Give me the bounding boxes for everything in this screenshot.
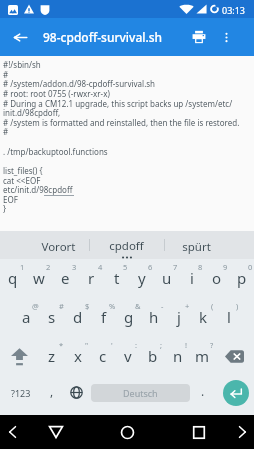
staticText: p <box>237 268 247 288</box>
staticText: . <box>201 383 205 399</box>
button[interactable]: Recent apps <box>181 415 217 449</box>
staticText: 8 <box>198 262 203 272</box>
staticText: a <box>22 307 31 327</box>
staticText: 9 <box>223 262 228 272</box>
button[interactable]: b <box>140 337 165 376</box>
button[interactable]: v <box>115 337 140 376</box>
button[interactable]: . <box>192 376 213 415</box>
staticText: d <box>73 307 83 327</box>
button[interactable]: e <box>52 259 78 298</box>
staticText: t <box>114 268 120 288</box>
staticText: 98-cpdoff-survival.sh <box>43 29 163 45</box>
staticText: * <box>59 340 64 350</box>
staticText: 1 <box>20 262 25 272</box>
staticText: - <box>161 301 164 311</box>
button[interactable]: j <box>166 298 191 337</box>
staticText: @ <box>32 301 39 311</box>
staticText: h <box>149 307 159 327</box>
staticText: list_files() { <box>3 165 43 176</box>
button[interactable]: Next <box>224 415 254 449</box>
staticText: c <box>99 346 107 366</box>
staticText: % <box>109 301 116 311</box>
button[interactable]: Change keyboard language <box>62 376 90 415</box>
staticText: Deutsch <box>123 387 158 399</box>
staticText: #!/sbin/sh <box>3 59 41 70</box>
button[interactable]: t <box>104 259 129 298</box>
staticText: v <box>124 346 132 366</box>
staticText: EOF <box>3 194 18 205</box>
button[interactable]: k <box>191 298 216 337</box>
button[interactable]: o <box>204 259 229 298</box>
staticText: init.d/98cpdoff, <box>3 107 61 118</box>
button[interactable]: Delete <box>215 337 254 376</box>
staticText: n <box>173 346 183 366</box>
button[interactable]: Navigate up <box>0 18 40 56</box>
staticText: # <box>3 69 9 80</box>
staticText: ! <box>185 340 188 350</box>
button[interactable]: s <box>39 298 65 337</box>
button[interactable]: z <box>39 337 65 376</box>
staticText: b <box>148 346 158 366</box>
button[interactable]: spürt <box>164 231 254 259</box>
staticText: 0 <box>248 262 253 272</box>
button[interactable]: d <box>65 298 91 337</box>
button[interactable]: Shift <box>0 337 39 376</box>
staticText: : <box>135 340 138 350</box>
button[interactable]: cpdoff <box>89 231 164 259</box>
button[interactable]: i <box>179 259 204 298</box>
button[interactable]: y <box>129 259 154 298</box>
staticText: # root: root 0755 (-rwxr-xr-x) <box>3 88 110 99</box>
staticText: # During a CM12.1 upgrade, this script b… <box>3 98 233 109</box>
staticText: # <box>3 126 9 137</box>
staticText: j <box>177 307 181 327</box>
button[interactable]: r <box>78 259 104 298</box>
button[interactable]: q <box>0 259 26 298</box>
button[interactable]: m <box>190 337 215 376</box>
button[interactable]: f <box>91 298 116 337</box>
button[interactable]: More options <box>214 25 238 49</box>
staticText: o <box>212 268 222 288</box>
button[interactable]: a <box>13 298 39 337</box>
button[interactable]: Vorort <box>0 231 89 259</box>
button[interactable]: p <box>229 259 254 298</box>
button[interactable]: Previous <box>0 415 30 449</box>
staticText: 03:13 <box>222 4 246 16</box>
staticText: y <box>138 268 146 288</box>
button[interactable]: x <box>65 337 90 376</box>
staticText: 3 <box>72 262 77 272</box>
staticText: x <box>74 346 82 366</box>
staticText: ? <box>210 340 214 350</box>
button[interactable]: Enter <box>223 380 249 406</box>
staticText: etc/init.d/98cpdoff <box>3 184 73 195</box>
button[interactable]: c <box>90 337 115 376</box>
button[interactable]: n <box>165 337 190 376</box>
staticText: m <box>195 346 210 366</box>
button[interactable]: ?123 <box>0 376 41 415</box>
staticText: . /tmp/backuptool.functions <box>3 146 108 157</box>
button[interactable]: h <box>141 298 166 337</box>
button[interactable]: , <box>41 376 62 415</box>
button[interactable]: u <box>154 259 179 298</box>
staticText: l <box>227 307 231 327</box>
staticText: cpdoff <box>109 238 144 254</box>
staticText: spürt <box>182 239 211 255</box>
button[interactable]: Home <box>109 415 145 449</box>
button[interactable]: Deutsch <box>91 384 190 402</box>
staticText: r <box>88 268 95 288</box>
button[interactable]: Back <box>38 415 74 449</box>
button[interactable]: w <box>26 259 52 298</box>
staticText: q <box>8 268 18 288</box>
staticText: 2 <box>46 262 51 272</box>
staticText: k <box>199 307 208 327</box>
button[interactable]: l <box>216 298 241 337</box>
staticText: # /system is formatted and reinstalled, … <box>3 117 240 128</box>
staticText: i <box>190 268 194 288</box>
staticText: ; <box>160 340 163 350</box>
staticText: f <box>101 307 107 327</box>
staticText: cat <<EOF <box>3 175 41 186</box>
staticText: & <box>135 301 141 311</box>
button[interactable]: g <box>116 298 141 337</box>
staticText: # <box>59 301 64 311</box>
button[interactable]: Print <box>186 24 212 50</box>
staticText: # /system/addon.d/98-cpdoff-survival.sh <box>3 78 156 89</box>
